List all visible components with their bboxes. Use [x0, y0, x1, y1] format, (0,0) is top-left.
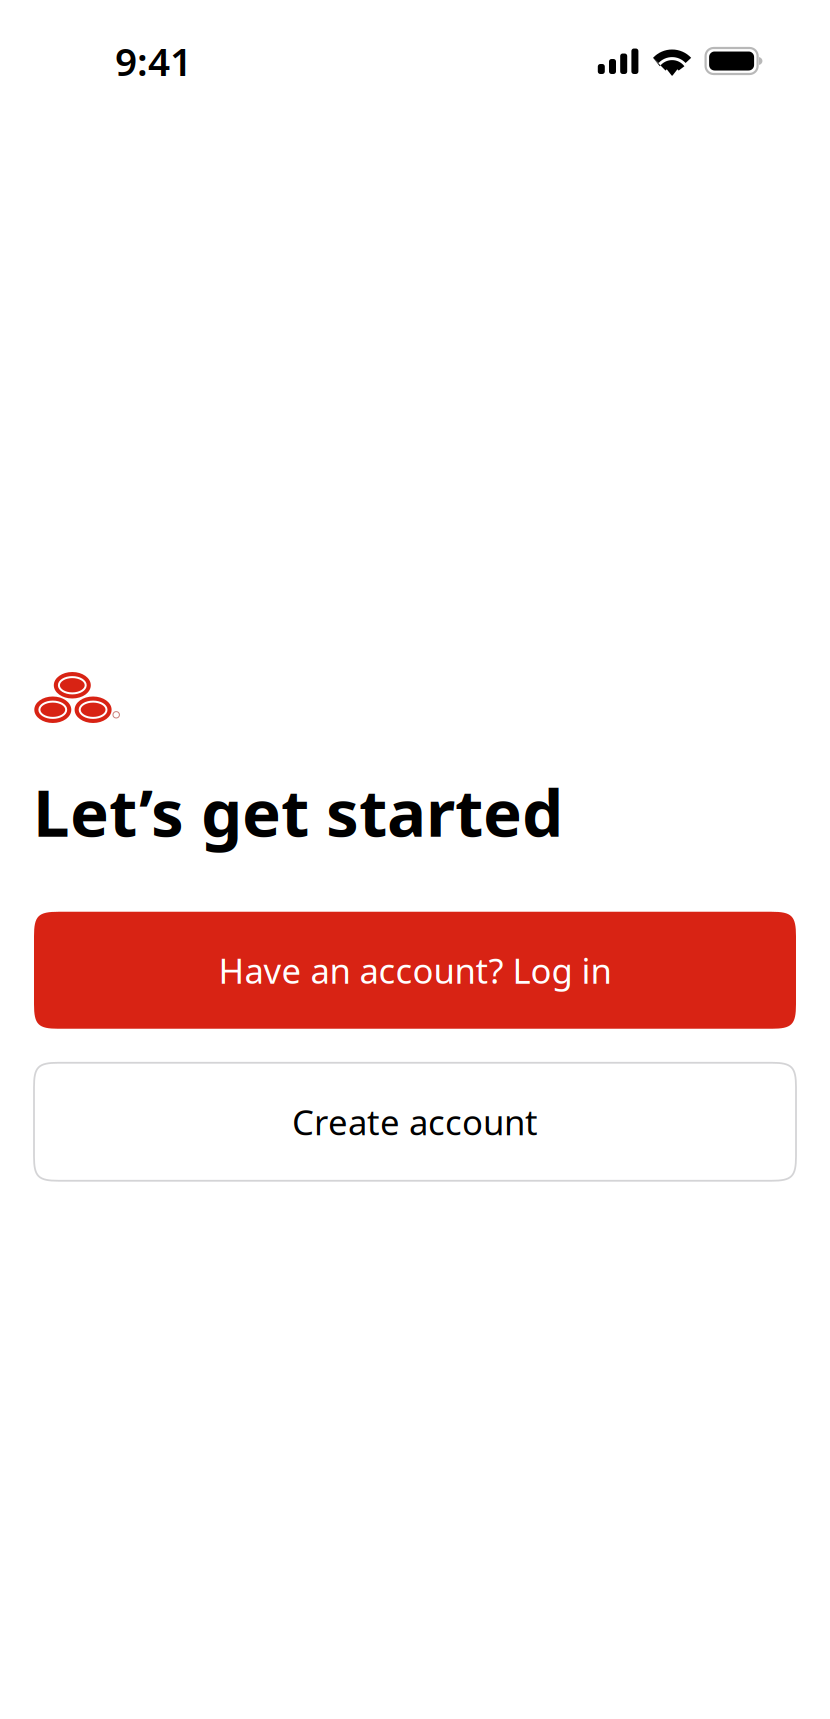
- button[interactable]: Have an account? Log in: [34, 912, 796, 1029]
- button[interactable]: Create account: [34, 1063, 796, 1181]
- staticText: Have an account? Log in: [218, 947, 611, 993]
- staticText: Let’s get started: [33, 768, 563, 855]
- staticText: Create account: [292, 1099, 538, 1145]
- staticText: 9:41: [115, 35, 192, 87]
